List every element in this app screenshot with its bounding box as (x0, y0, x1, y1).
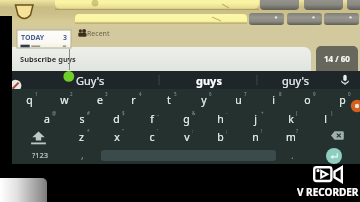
staticText: f (150, 112, 154, 126)
button[interactable]: r (116, 89, 151, 108)
button[interactable]: Guy's (62, 71, 160, 89)
button[interactable]: j (238, 108, 273, 127)
staticText: 4 (139, 91, 142, 97)
button[interactable]: i (256, 89, 291, 108)
button[interactable] (324, 13, 359, 25)
staticText: ?123 (32, 150, 49, 160)
button[interactable]: t (151, 89, 186, 108)
staticText: l (324, 112, 327, 126)
button[interactable] (347, 0, 360, 10)
button[interactable] (260, 0, 299, 10)
button[interactable]: z (64, 126, 99, 145)
button[interactable]: m (273, 126, 308, 145)
staticText: TODAY (21, 33, 45, 43)
staticText: ; (226, 128, 228, 134)
staticText: , (81, 148, 84, 162)
button[interactable]: Backspace (308, 126, 360, 145)
button[interactable]: g (169, 108, 204, 127)
button[interactable] (287, 13, 322, 25)
staticText: o (304, 93, 311, 107)
button[interactable]: h (203, 108, 238, 127)
button[interactable]: y (186, 89, 221, 108)
button[interactable]: a (29, 108, 64, 127)
staticText: 0 (348, 91, 351, 97)
button[interactable]: Recent (78, 27, 112, 41)
staticText: 14 / 60 (324, 53, 350, 64)
button[interactable]: c (134, 126, 169, 145)
staticText: guy's (282, 73, 310, 88)
staticText: ? (296, 128, 298, 134)
staticText: ) (331, 110, 333, 116)
staticText: 3 (63, 33, 68, 43)
staticText: a (44, 112, 50, 126)
staticText: g (183, 112, 190, 126)
button[interactable]: b (203, 126, 238, 145)
staticText: 9 (313, 91, 316, 97)
staticText: + (261, 110, 264, 116)
button[interactable]: l (308, 108, 343, 127)
button[interactable]: e (82, 89, 117, 108)
button[interactable]: u (221, 89, 256, 108)
button[interactable] (304, 0, 343, 10)
staticText: y (201, 93, 207, 107)
staticText: V RECORDER (297, 185, 359, 199)
staticText: j (254, 112, 257, 126)
staticText: b (217, 130, 224, 144)
staticText: * (87, 128, 90, 134)
button[interactable]: , (64, 145, 101, 164)
staticText: ( (296, 110, 298, 116)
staticText: _ (157, 110, 159, 116)
button[interactable]: guys (160, 71, 258, 89)
staticText: w (60, 93, 69, 107)
button[interactable]: q (12, 89, 47, 108)
button[interactable]: d (99, 108, 134, 127)
button[interactable]: Voice input (336, 71, 354, 89)
button[interactable] (55, 0, 259, 9)
staticText: x (114, 130, 120, 144)
button[interactable]: p (325, 89, 360, 108)
staticText: e (97, 93, 103, 107)
staticText: p (339, 93, 346, 107)
button[interactable]: ?123 (12, 145, 64, 164)
button[interactable]: Enter (326, 148, 342, 164)
staticText: " (122, 128, 124, 134)
staticText: : (192, 128, 194, 134)
button[interactable] (75, 14, 247, 23)
button[interactable]: o (290, 89, 325, 108)
staticText: k (288, 112, 294, 126)
staticText: s (79, 112, 85, 126)
staticText: m (286, 130, 296, 144)
staticText: h (217, 112, 224, 126)
staticText: ! (261, 128, 263, 134)
staticText: u (235, 93, 242, 107)
button[interactable]: f (134, 108, 169, 127)
staticText: Guy's (76, 73, 105, 88)
staticText: - (226, 110, 228, 116)
staticText: 8 (279, 91, 282, 97)
staticText: r (131, 93, 136, 107)
staticText: c (149, 130, 155, 144)
staticText: i (272, 93, 275, 107)
button[interactable]: k (273, 108, 308, 127)
button[interactable]: guy's (258, 71, 334, 89)
button[interactable]: w (47, 89, 82, 108)
button[interactable]: x (99, 126, 134, 145)
staticText: t (167, 93, 171, 107)
button[interactable]: v (169, 126, 204, 145)
staticText: 1 (35, 91, 38, 97)
staticText: q (26, 93, 33, 107)
button[interactable]: n (238, 126, 273, 145)
staticText: v (184, 130, 190, 144)
button[interactable]: Shift (12, 126, 64, 145)
button[interactable]: 14 / 60 (316, 46, 358, 71)
staticText: guys (196, 73, 222, 88)
staticText: ' (157, 128, 159, 134)
button[interactable]: s (64, 108, 99, 127)
button[interactable]: TODAY (17, 30, 71, 48)
button[interactable] (14, 48, 70, 72)
staticText: @ (52, 110, 57, 116)
button[interactable]: . (276, 145, 308, 164)
button[interactable] (249, 13, 284, 25)
staticText: $ (122, 110, 125, 116)
